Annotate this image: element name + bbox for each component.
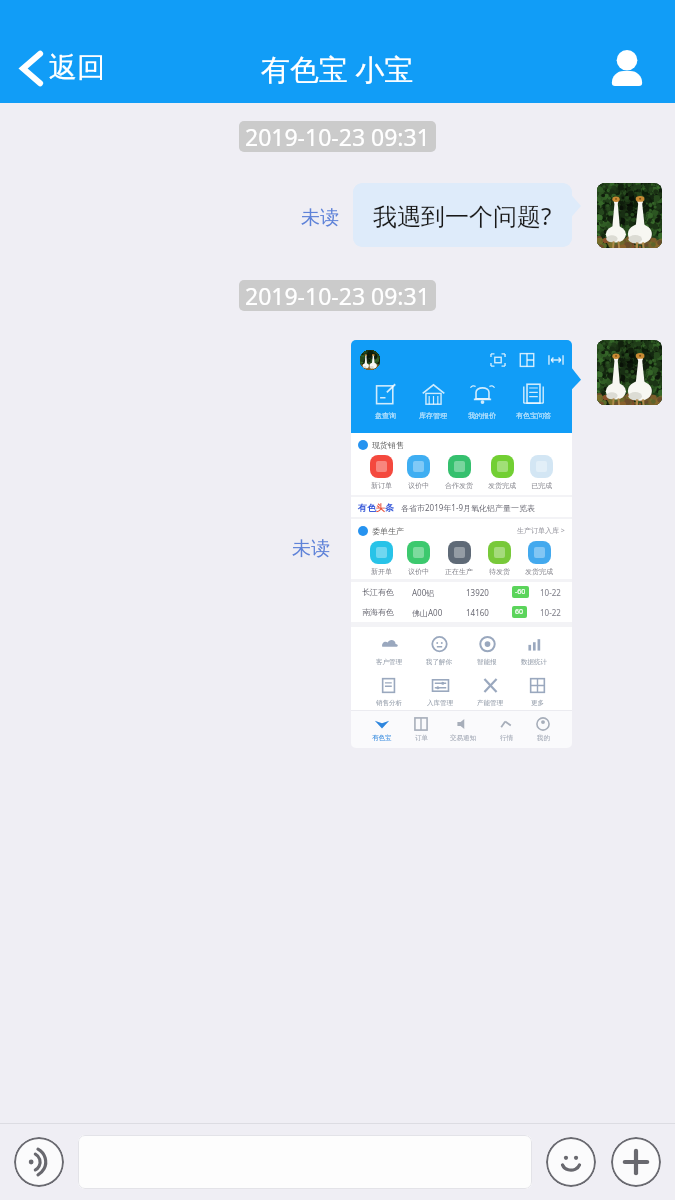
staticText: 议价中 <box>408 567 429 576</box>
staticText: 委单生产 <box>372 526 404 536</box>
staticText: 发货完成 <box>488 481 516 490</box>
button[interactable]: 更多 <box>528 676 547 707</box>
button[interactable]: Emoji <box>546 1137 596 1187</box>
staticText: 2019-10-23 09:31 <box>245 121 430 152</box>
staticText: 10-22 <box>540 607 561 618</box>
staticText: 未读 <box>301 206 339 230</box>
staticText: 10-22 <box>540 587 561 598</box>
staticText: 销售分析 <box>376 699 402 707</box>
staticText: 条 <box>385 502 394 513</box>
staticText: 订单 <box>415 734 428 742</box>
staticText: 各省市2019年1-9月氧化铝产量一览表 <box>401 502 536 513</box>
staticText: 有色宝 <box>372 734 392 742</box>
staticText: 已完成 <box>531 481 552 490</box>
button[interactable]: 数据统计 <box>521 635 547 666</box>
button[interactable]: 客户管理 <box>376 635 402 666</box>
staticText: 我遇到一个问题? <box>373 199 552 232</box>
staticText: 佛山A00 <box>412 607 466 618</box>
staticText: 14160 <box>466 607 512 618</box>
button[interactable]: Avatar <box>597 340 662 405</box>
staticText: 产能管理 <box>477 699 503 707</box>
staticText: 库存管理 <box>419 411 447 420</box>
button[interactable]: 我遇到一个问题? <box>353 183 572 247</box>
button[interactable]: 订单 <box>413 716 429 742</box>
staticText: 客户管理 <box>376 658 402 666</box>
staticText: 长江有色 <box>362 587 412 597</box>
staticText: 待发货 <box>489 567 510 576</box>
button[interactable]: Shared screenshot <box>351 340 572 748</box>
staticText: 有色宝问答 <box>516 411 551 420</box>
staticText: -60 <box>515 587 526 597</box>
staticText: 数据统计 <box>521 658 547 666</box>
staticText: 我了解你 <box>426 658 452 666</box>
staticText: 智能报 <box>477 658 497 666</box>
staticText: 新订单 <box>371 481 392 490</box>
button[interactable]: 产能管理 <box>477 676 503 707</box>
button[interactable]: Voice message <box>14 1137 64 1187</box>
staticText: 我的 <box>537 734 550 742</box>
button[interactable]: 行情 <box>498 716 514 742</box>
button[interactable]: Avatar <box>597 183 662 248</box>
staticText: 2019-10-23 09:31 <box>245 280 430 311</box>
button[interactable]: More <box>611 1137 661 1187</box>
staticText: 南海有色 <box>362 607 412 617</box>
staticText: 有色宝 小宝 <box>261 49 414 89</box>
staticText: 盘查询 <box>375 411 396 420</box>
button[interactable]: 返回 <box>11 45 117 92</box>
staticText: 议价中 <box>408 481 429 490</box>
button[interactable]: 我的 <box>535 716 551 742</box>
button[interactable]: 有色宝 <box>372 716 392 742</box>
button[interactable]: 智能报 <box>477 635 497 666</box>
staticText: A00铝 <box>412 587 466 598</box>
staticText: 有色 <box>358 502 376 513</box>
staticText: 新开单 <box>371 567 392 576</box>
button[interactable]: 交易通知 <box>450 716 476 742</box>
button[interactable]: Profile <box>602 44 652 94</box>
button[interactable]: 销售分析 <box>376 676 402 707</box>
staticText: 入库管理 <box>427 699 453 707</box>
button[interactable] <box>78 1135 532 1189</box>
staticText: 头 <box>376 502 385 513</box>
button[interactable]: 我了解你 <box>426 635 452 666</box>
staticText: 13920 <box>466 587 512 598</box>
staticText: 现货销售 <box>372 440 404 450</box>
staticText: 未读 <box>292 537 330 561</box>
staticText: 合作发货 <box>445 481 473 490</box>
staticText: 60 <box>515 607 524 617</box>
staticText: 我的报价 <box>468 411 496 420</box>
staticText: 返回 <box>49 50 105 85</box>
staticText: 更多 <box>531 699 544 707</box>
staticText: 交易通知 <box>450 734 476 742</box>
button[interactable]: 入库管理 <box>427 676 453 707</box>
staticText: 正在生产 <box>445 567 473 576</box>
staticText: 行情 <box>500 734 513 742</box>
staticText: 生产订单入库 > <box>517 526 565 536</box>
staticText: 发货完成 <box>525 567 553 576</box>
